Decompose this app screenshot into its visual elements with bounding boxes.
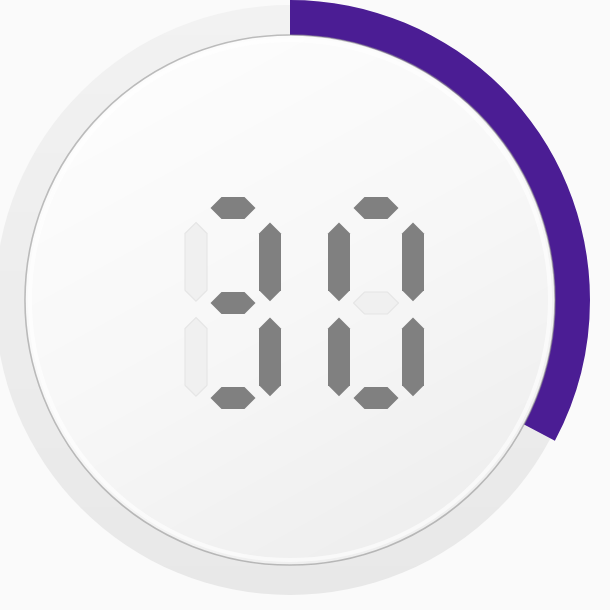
button[interactable]: Countdown timer showing 90 (0, 0, 610, 610)
